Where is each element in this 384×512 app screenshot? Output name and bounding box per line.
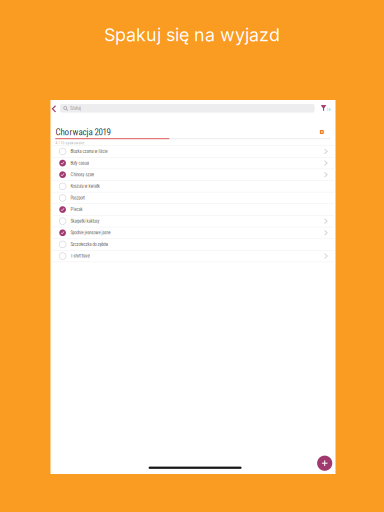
staticText: Bluzka czarna w liście [70,149,107,154]
staticText: Spodnie jeansowe jasne [70,230,110,235]
staticText: Plecak [70,207,82,212]
staticText: Skarpetki kaktusy [70,218,99,224]
staticText: 16 [327,108,331,111]
staticText: Paszport [70,195,84,201]
staticText: T-shirt travel [70,253,90,259]
button[interactable]: Paszport [50,192,335,204]
button[interactable]: Change list view [318,128,326,136]
button[interactable]: Szczoteczka do zębów [50,239,335,250]
button[interactable]: Skarpetki kaktusy [50,216,335,227]
button[interactable]: Filter [320,103,332,113]
button[interactable]: Chinosy szare [50,169,335,181]
staticText: 4 / 10 spakowane [55,141,84,145]
button[interactable]: Koszula w kwiatki [50,181,335,192]
button[interactable]: Add item [315,454,334,473]
staticText: Spakuj się na wyjazd [104,24,280,46]
staticText: Buty casual [70,160,89,166]
button[interactable]: Spodnie jeansowe jasne [50,227,335,239]
staticText: Szczoteczka do zębów [70,242,108,247]
staticText: Chorwacja 2019 [55,127,110,137]
button[interactable]: Buty casual [50,157,335,169]
button[interactable]: Bluzka czarna w liście [50,146,335,157]
button[interactable]: T-shirt travel [50,250,335,262]
staticText: Szukaj [70,106,81,111]
button[interactable]: Back [50,103,57,114]
button[interactable]: Plecak [50,204,335,216]
staticText: Chinosy szare [70,172,94,177]
staticText: Koszula w kwiatki [70,184,100,189]
